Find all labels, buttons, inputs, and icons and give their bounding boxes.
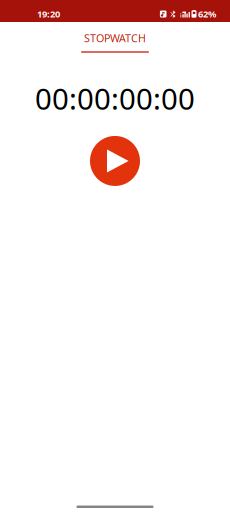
staticText: 62% xyxy=(198,8,216,20)
button[interactable]: STOPWATCH xyxy=(0,29,230,53)
staticText: 00:00:00:00 xyxy=(35,79,195,118)
button[interactable]: Start stopwatch xyxy=(90,136,140,186)
staticText: STOPWATCH xyxy=(84,31,146,45)
staticText: 19:20 xyxy=(37,8,60,20)
